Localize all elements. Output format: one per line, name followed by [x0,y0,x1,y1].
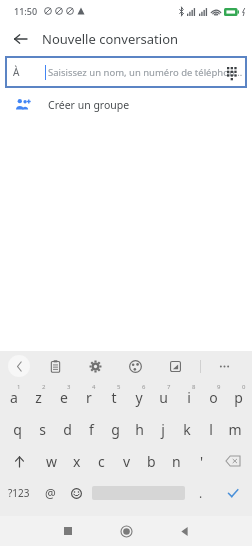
staticText: e [60,388,68,407]
button[interactable]: u [151,381,176,413]
button[interactable]: d [55,413,79,445]
button[interactable]: z [26,381,51,413]
button[interactable]: e [51,381,76,413]
staticText: 1 [17,383,21,391]
button[interactable]: y [126,381,151,413]
staticText: x [73,452,81,471]
button[interactable]: i [176,381,201,413]
staticText: Créer un groupe [48,98,130,112]
button[interactable]: Majuscule [0,445,39,477]
button[interactable]: q [5,413,30,445]
staticText: t [111,388,117,407]
staticText: 6 [142,383,146,391]
staticText: À [13,65,20,79]
button[interactable]: f [79,413,103,445]
staticText: a [10,388,18,407]
button[interactable]: w [39,445,64,477]
staticText: 0 [242,383,246,391]
button[interactable]: g [103,413,127,445]
button[interactable]: Retour [6,25,34,53]
button[interactable]: Récents [53,516,83,546]
staticText: k [183,420,191,439]
staticText: 8 [192,383,196,391]
button[interactable]: Clavier numérique [220,60,244,84]
staticText: 5 [117,383,121,391]
staticText: Nouvelle conversation [42,30,179,48]
staticText: i [187,388,191,407]
staticText: z [35,388,42,407]
staticText: @ [45,485,56,501]
button[interactable]: Supprimer [214,445,252,477]
button[interactable]: Valider [214,477,252,509]
staticText: y [135,388,143,407]
staticText: 2 [42,383,46,391]
button[interactable]: b [139,445,164,477]
button[interactable]: r [76,381,101,413]
staticText: p [234,388,243,407]
button[interactable]: j [151,413,175,445]
button[interactable]: Accueil [111,516,141,546]
staticText: ?123 [8,486,30,500]
staticText: c [98,452,105,471]
staticText: d [63,420,72,439]
staticText: m [228,420,242,439]
button[interactable]: Précédent [8,355,30,377]
button[interactable]: ?123 [0,477,37,509]
staticText: u [159,388,168,407]
staticText: g [111,420,120,439]
button[interactable]: Retour [169,516,199,546]
staticText: b [147,452,156,471]
button[interactable]: h [127,413,151,445]
button[interactable]: Plus [215,357,233,375]
staticText: s [39,420,46,439]
staticText: q [13,420,22,439]
button[interactable]: l [199,413,223,445]
staticText: j [161,420,165,439]
button[interactable]: @ [37,477,63,509]
button[interactable]: x [64,445,89,477]
button[interactable]: Paramètres [86,357,104,375]
button[interactable]: Emoji [63,477,89,509]
button[interactable]: t [101,381,126,413]
button[interactable]: À [5,56,247,88]
staticText: f [89,420,94,439]
button[interactable]: Créer un groupe [0,88,252,122]
button[interactable]: o [201,381,226,413]
staticText: . [199,485,203,501]
button[interactable]: a [1,381,26,413]
button[interactable]: ' [189,445,214,477]
staticText: 7 [167,383,171,391]
staticText: 9 [217,383,221,391]
button[interactable]: Presse-papiers [46,357,64,375]
staticText: o [209,388,218,407]
staticText: 11:50 [14,5,38,17]
staticText: r [86,388,92,407]
button[interactable]: n [164,445,189,477]
button[interactable]: s [30,413,55,445]
button[interactable]: Thèmes [126,357,144,375]
staticText: v [123,452,131,471]
staticText: 4 [92,383,96,391]
button[interactable]: m [223,413,247,445]
button[interactable]: Mode une main [166,357,184,375]
staticText: w [46,452,58,471]
staticText: Saisissez un nom, un numéro de téléphon… [48,66,243,79]
button[interactable]: k [175,413,199,445]
staticText: h [135,420,144,439]
staticText: 3 [67,383,71,391]
button[interactable]: p [226,381,251,413]
staticText: n [172,452,181,471]
button[interactable]: c [89,445,114,477]
button[interactable]: . [188,477,214,509]
button[interactable]: v [114,445,139,477]
staticText: l [209,420,213,439]
staticText: ' [200,452,204,471]
